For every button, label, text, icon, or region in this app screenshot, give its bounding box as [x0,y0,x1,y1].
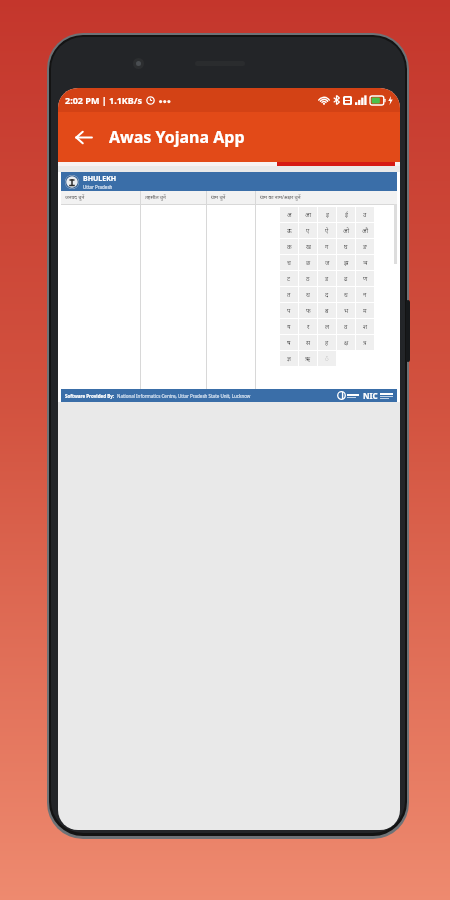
button[interactable]: ं [318,351,336,366]
button[interactable]: ह [318,335,336,350]
staticText: अ [287,211,292,219]
staticText: ट [287,275,291,283]
staticText: ख [306,243,311,251]
button[interactable]: ल [318,319,336,334]
button[interactable]: घ [337,239,355,254]
button[interactable]: ग्राम का नाम/अक्षर चुनें [256,191,397,204]
button[interactable]: न [356,287,374,302]
button[interactable]: ख [299,239,317,254]
staticText: स [306,339,311,347]
staticText: ई [345,211,348,219]
button[interactable]: स [299,335,317,350]
button[interactable]: ज्ञ [280,351,298,366]
staticText: क [287,243,292,251]
staticText: ब [325,307,329,315]
button[interactable]: ऐ [318,223,336,238]
staticText: ओ [343,227,350,235]
button[interactable]: ठ [299,271,317,286]
button[interactable]: म [356,303,374,318]
staticText: ङ [363,243,367,251]
button[interactable]: आ [299,207,317,222]
button[interactable]: ग [318,239,336,254]
staticText: ष [287,339,291,347]
staticText: छ [306,259,311,267]
staticText: ढ [344,275,348,283]
button[interactable]: ढ [337,271,355,286]
staticText: ग्राम चुनें [211,194,226,201]
button[interactable]: झ [337,255,355,270]
button[interactable]: ञ [356,255,374,270]
button[interactable]: छ [299,255,317,270]
button[interactable]: ई [337,207,355,222]
staticText: च [287,259,291,267]
staticText: National Informatics Centre, Uttar Prade… [117,393,251,399]
staticText: NIC [363,390,378,401]
button[interactable]: भ [337,303,355,318]
button[interactable]: त [280,287,298,302]
button[interactable]: प [280,303,298,318]
button[interactable]: Back [64,118,102,156]
staticText: घ [344,243,348,251]
staticText: क्ष [344,339,349,347]
button[interactable]: त्र [356,335,374,350]
staticText: ग्राम का नाम/अक्षर चुनें [260,194,301,201]
button[interactable]: क [280,239,298,254]
staticText: श [363,323,368,331]
staticText: BHULEKH [83,174,117,184]
staticText: तहसील चुनें [145,194,166,201]
button[interactable]: अ [280,207,298,222]
button[interactable]: इ [318,207,336,222]
button[interactable]: जनपद चुनें [61,191,140,204]
button[interactable]: ङ [356,239,374,254]
staticText: फ [306,307,311,315]
staticText: य [287,323,291,331]
staticText: उ [363,211,367,219]
button[interactable]: तहसील चुनें [141,191,206,204]
button[interactable]: र [299,319,317,334]
button[interactable]: ऋ [299,351,317,366]
staticText: Uttar Pradesh [83,184,113,190]
staticText: ठ [306,275,310,283]
button[interactable]: क्ष [337,335,355,350]
staticText: प [287,307,291,315]
staticText: ण [363,275,368,283]
button[interactable]: ड [318,271,336,286]
staticText: द [325,291,329,299]
button[interactable]: उ [356,207,374,222]
button[interactable]: व [337,319,355,334]
button[interactable]: च [280,255,298,270]
staticText: ऊ [287,227,292,235]
staticText: ल [325,323,330,331]
staticText: ग [325,243,329,251]
button[interactable]: ट [280,271,298,286]
button[interactable]: औ [356,223,374,238]
staticText: 2:02 PM | 1.1KB/s [65,94,143,106]
button[interactable]: ओ [337,223,355,238]
button[interactable]: ध [337,287,355,302]
staticText: म [363,307,367,315]
button[interactable]: ब [318,303,336,318]
staticText: र [307,323,310,331]
staticText: औ [362,227,369,235]
staticText: ञ [363,259,368,267]
staticText: न [363,291,367,299]
staticText: ड [325,275,329,283]
button[interactable]: ए [299,223,317,238]
button[interactable]: ग्राम चुनें [207,191,255,204]
button[interactable]: थ [299,287,317,302]
staticText: त [287,291,291,299]
staticText: भ [344,307,349,315]
button[interactable]: ष [280,335,298,350]
button[interactable]: य [280,319,298,334]
button[interactable]: श [356,319,374,334]
staticText: ध [344,291,348,299]
staticText: थ [306,291,310,299]
button[interactable]: ज [318,255,336,270]
button[interactable]: फ [299,303,317,318]
staticText: ह [325,339,329,347]
button[interactable]: द [318,287,336,302]
button[interactable]: ण [356,271,374,286]
staticText: आ [305,211,312,219]
button[interactable]: ऊ [280,223,298,238]
staticText: ऋ [305,355,311,363]
